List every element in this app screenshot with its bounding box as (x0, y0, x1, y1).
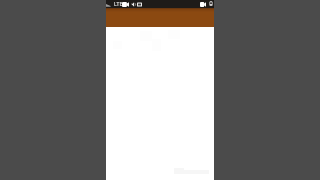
button[interactable]: Navigate up (106, 8, 122, 27)
button[interactable] (122, 8, 200, 27)
staticText: LTE (114, 1, 123, 8)
button[interactable]: More options (200, 8, 214, 27)
